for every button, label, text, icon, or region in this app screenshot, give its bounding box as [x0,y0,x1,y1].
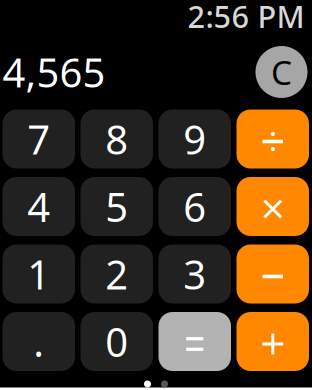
button[interactable]: 6 [158,177,231,236]
button[interactable]: Subtract [236,244,309,303]
button[interactable]: 3 [158,244,231,303]
staticText: C [271,50,292,94]
staticText: 3 [183,247,206,300]
button[interactable]: 2 [80,244,153,303]
staticText: 0 [105,315,128,368]
button[interactable]: 0 [80,312,153,371]
staticText: 2:56 PM [187,0,304,36]
button[interactable]: . [2,312,75,371]
staticText: . [33,315,44,368]
staticText: 6 [183,180,206,233]
button[interactable]: 9 [158,109,231,168]
button[interactable]: 4 [2,177,75,236]
staticText: 2 [105,247,128,300]
button[interactable]: 1 [2,244,75,303]
staticText: 1 [27,247,50,300]
button[interactable]: Divide [236,109,309,168]
button[interactable]: 5 [80,177,153,236]
staticText: 4,565 [2,45,105,98]
button[interactable]: Clear [255,46,307,98]
staticText: 8 [105,112,128,165]
button[interactable]: Add [236,312,309,371]
button[interactable]: Multiply [236,177,309,236]
staticText: 9 [183,112,206,165]
button[interactable]: Equals [158,312,231,371]
staticText: 7 [27,112,50,165]
button[interactable]: 8 [80,109,153,168]
button[interactable]: 7 [2,109,75,168]
staticText: 5 [105,180,128,233]
staticText: 4 [27,180,50,233]
